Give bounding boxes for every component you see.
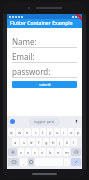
button[interactable]: Google xyxy=(10,119,15,124)
button[interactable]: password: xyxy=(12,66,77,78)
staticText: u xyxy=(56,130,59,135)
staticText: o xyxy=(70,130,73,135)
button[interactable]: Backspace xyxy=(71,148,81,156)
button[interactable]: q xyxy=(8,128,15,136)
staticText: s xyxy=(23,140,25,145)
button[interactable]: submit xyxy=(12,81,77,88)
staticText: z xyxy=(20,150,22,155)
button[interactable]: h xyxy=(50,138,56,146)
button[interactable]: Flutter Container Example xyxy=(7,19,82,28)
button[interactable]: d xyxy=(28,138,35,146)
button[interactable]: l xyxy=(71,138,77,146)
button[interactable]: g xyxy=(43,138,49,146)
staticText: f xyxy=(38,140,40,145)
staticText: n xyxy=(57,150,60,155)
staticText: Name: xyxy=(12,36,37,47)
staticText: x xyxy=(27,150,30,155)
button[interactable]: v xyxy=(39,148,46,156)
staticText: l xyxy=(73,140,75,145)
staticText: submit xyxy=(39,82,51,87)
staticText: password: xyxy=(12,66,51,77)
staticText: r xyxy=(35,130,37,135)
button[interactable]: w xyxy=(16,128,23,136)
button[interactable]: , xyxy=(20,158,27,166)
button[interactable]: a xyxy=(12,138,19,146)
staticText: k xyxy=(66,140,69,145)
button[interactable]: i xyxy=(61,128,67,136)
staticText: y xyxy=(49,130,52,135)
staticText: i xyxy=(63,130,65,135)
button[interactable]: Name: xyxy=(12,36,77,48)
button[interactable]: b xyxy=(47,148,54,156)
staticText: c xyxy=(34,150,36,155)
button[interactable]: j xyxy=(57,138,63,146)
button[interactable]: Shift xyxy=(8,148,17,156)
button[interactable]: Symbols xyxy=(8,158,19,166)
staticText: j xyxy=(59,140,61,145)
button[interactable]: z xyxy=(18,148,24,156)
staticText: v xyxy=(41,150,44,155)
button[interactable]: Emoji xyxy=(28,158,34,166)
button[interactable]: . xyxy=(64,158,70,166)
staticText: b xyxy=(49,150,52,155)
button[interactable]: x xyxy=(25,148,31,156)
button[interactable]: o xyxy=(68,128,74,136)
staticText: g xyxy=(45,140,48,145)
staticText: p xyxy=(77,130,80,135)
button[interactable]: u xyxy=(54,128,60,136)
button[interactable]: k xyxy=(64,138,70,146)
button[interactable]: p xyxy=(75,128,81,136)
button[interactable]: f xyxy=(36,138,42,146)
button[interactable]: Enter xyxy=(71,158,81,166)
staticText: Flutter Container Example xyxy=(10,20,73,27)
staticText: m xyxy=(65,150,69,155)
staticText: , xyxy=(23,160,25,165)
button[interactable]: suggest pacts xyxy=(34,120,55,124)
staticText: Email: xyxy=(12,51,35,62)
staticText: . xyxy=(66,160,68,165)
button[interactable]: Voice input xyxy=(74,119,79,124)
staticText: h xyxy=(52,140,55,145)
staticText: t xyxy=(42,130,44,135)
button[interactable]: y xyxy=(47,128,53,136)
staticText: d xyxy=(30,140,33,145)
staticText: a xyxy=(14,140,17,145)
staticText: suggest pacts xyxy=(34,120,55,124)
staticText: w xyxy=(18,130,22,135)
button[interactable]: c xyxy=(32,148,38,156)
staticText: e xyxy=(26,130,29,135)
staticText: q xyxy=(10,130,13,135)
button[interactable]: n xyxy=(55,148,62,156)
button[interactable]: e xyxy=(24,128,31,136)
button[interactable]: m xyxy=(63,148,70,156)
button[interactable]: Email: xyxy=(12,51,77,63)
other: Debug banner xyxy=(68,14,82,28)
button[interactable]: t xyxy=(40,128,46,136)
button[interactable]: s xyxy=(20,138,27,146)
button[interactable]: r xyxy=(32,128,39,136)
